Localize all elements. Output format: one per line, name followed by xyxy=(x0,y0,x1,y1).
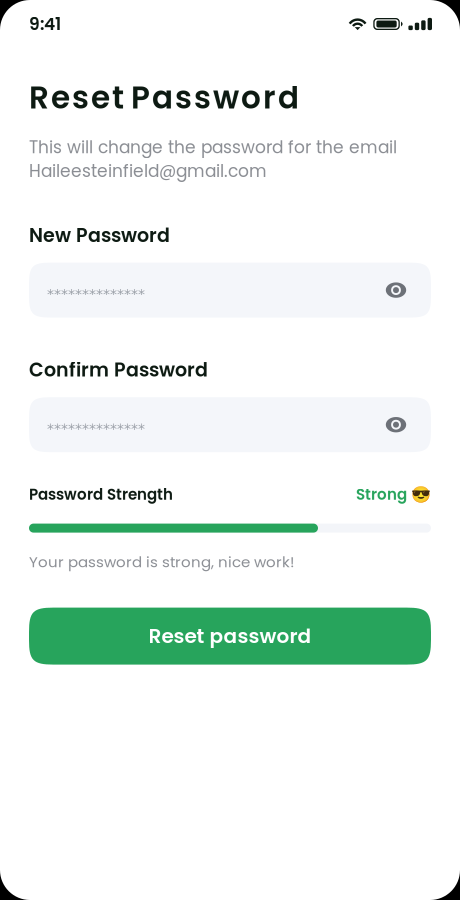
staticText: ************** xyxy=(47,421,145,437)
staticText: R e s e t P a s s w o r d xyxy=(29,76,299,119)
button[interactable]: Show Confirm Password xyxy=(361,397,431,452)
button[interactable]: ************** xyxy=(29,397,361,452)
staticText: New Password xyxy=(29,222,170,249)
staticText: Confirm Password xyxy=(29,357,208,383)
staticText: Your password is strong, nice work! xyxy=(29,552,294,573)
staticText: Password Strength xyxy=(29,484,173,505)
staticText: Haileesteinfield@gmail.com xyxy=(29,159,267,183)
staticText: Strong xyxy=(356,484,407,505)
staticText: This will change the password for the em… xyxy=(29,135,397,159)
staticText: 😎 xyxy=(407,483,431,506)
staticText: 9:41 xyxy=(29,12,61,36)
staticText: Reset password xyxy=(148,622,311,650)
button[interactable]: Reset password xyxy=(29,608,431,665)
button[interactable]: Show New Password xyxy=(361,263,431,318)
button[interactable]: ************** xyxy=(29,263,361,318)
staticText: ************** xyxy=(47,286,145,302)
